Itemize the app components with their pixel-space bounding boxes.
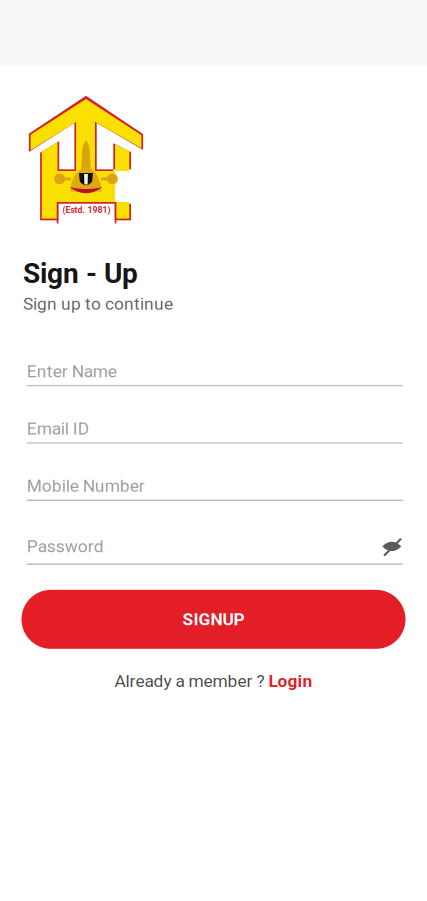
button[interactable]: Enter Name	[27, 357, 403, 415]
staticText: Mobile Number	[27, 476, 145, 496]
button[interactable]: Login	[268, 671, 312, 691]
staticText: Email ID	[27, 418, 89, 439]
staticText: SIGNUP	[182, 609, 244, 629]
button[interactable]: Password	[27, 529, 403, 565]
button[interactable]: SIGNUP	[21, 590, 405, 649]
staticText: Sign - Up	[23, 257, 138, 290]
staticText: Login	[268, 671, 312, 691]
staticText: (Estd. 1981)	[62, 205, 110, 215]
staticText: Password	[27, 536, 104, 557]
button[interactable]: Email ID	[27, 415, 403, 472]
staticText: Enter Name	[27, 361, 117, 381]
staticText: Sign up to continue	[23, 294, 173, 314]
button[interactable]: Mobile Number	[27, 472, 403, 529]
staticText: Already a member ?	[114, 671, 268, 691]
